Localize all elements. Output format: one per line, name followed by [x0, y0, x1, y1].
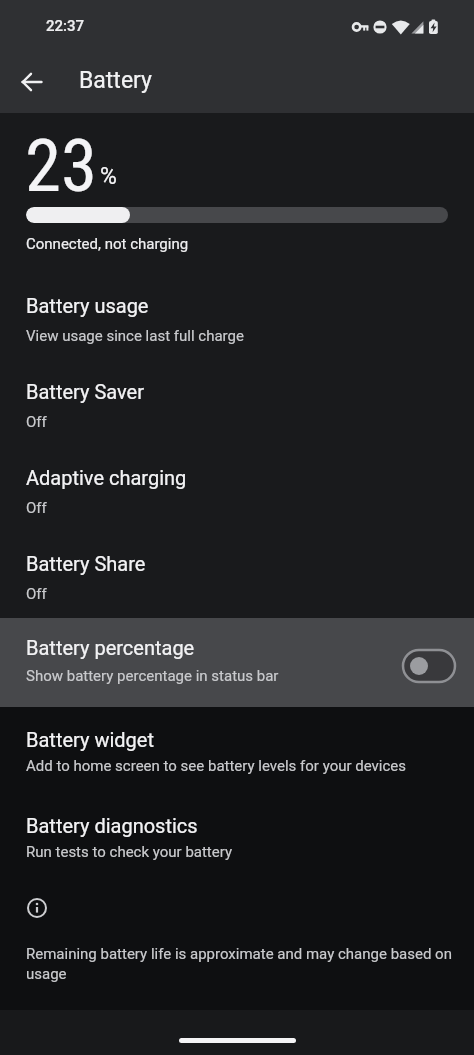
staticText: Show battery percentage in status bar [26, 667, 279, 685]
staticText: Run tests to check your battery [26, 843, 233, 861]
staticText: 22:37 [46, 17, 85, 35]
button[interactable]: Battery diagnostics [0, 793, 474, 879]
button[interactable]: Adaptive charging [0, 453, 474, 539]
staticText: Adaptive charging [26, 466, 187, 489]
staticText: Connected, not charging [26, 235, 189, 253]
button[interactable]: Battery Saver [0, 367, 474, 453]
button[interactable] [16, 66, 48, 98]
staticText: Battery usage [26, 294, 149, 317]
staticText: Battery Share [26, 552, 146, 575]
button[interactable]: Battery percentage [0, 618, 474, 707]
staticText: Battery percentage [26, 636, 195, 659]
staticText: Add to home screen to see battery levels… [26, 757, 407, 775]
staticText: Battery Saver [26, 380, 144, 403]
staticText: Remaining battery life is approximate an… [26, 945, 462, 982]
staticText: Battery diagnostics [26, 814, 198, 837]
staticText: Off [26, 585, 47, 603]
staticText: View usage since last full charge [26, 327, 244, 345]
staticText: Battery widget [26, 728, 154, 751]
staticText: 23 [25, 123, 98, 209]
staticText: Battery [79, 67, 152, 94]
staticText: Off [26, 413, 47, 431]
button[interactable]: Battery widget [0, 707, 474, 793]
button[interactable]: Battery usage [0, 281, 474, 367]
staticText: Off [26, 499, 47, 517]
button[interactable]: Battery Share [0, 539, 474, 618]
staticText: % [100, 163, 117, 190]
